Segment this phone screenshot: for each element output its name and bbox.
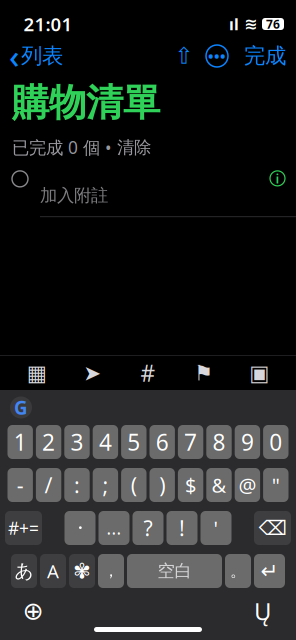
staticText: ( bbox=[131, 471, 137, 499]
button[interactable]: Add tag bbox=[129, 357, 167, 389]
staticText: 空白 bbox=[157, 560, 191, 582]
button[interactable]: 4 bbox=[93, 425, 118, 459]
button[interactable]: ) bbox=[149, 468, 175, 502]
staticText: @ bbox=[238, 472, 256, 498]
staticText: " bbox=[272, 472, 280, 498]
button[interactable]: @ bbox=[235, 468, 260, 502]
button[interactable]: ; bbox=[93, 468, 118, 502]
staticText: 加入附註 bbox=[40, 185, 108, 206]
staticText: ・ bbox=[71, 517, 88, 539]
staticText: 完成 bbox=[244, 43, 286, 69]
staticText: 5 bbox=[127, 427, 140, 457]
staticText: # bbox=[140, 358, 155, 388]
button[interactable]: 6 bbox=[149, 425, 175, 459]
button[interactable]: ... bbox=[98, 511, 129, 545]
button[interactable]: 3 bbox=[64, 425, 90, 459]
button[interactable]: / bbox=[36, 468, 61, 502]
staticText bbox=[40, 165, 45, 190]
staticText: 清除 bbox=[117, 137, 151, 158]
button[interactable]: ・ bbox=[64, 511, 95, 545]
staticText: あ bbox=[14, 559, 33, 582]
staticText: ? bbox=[143, 514, 152, 542]
button[interactable]: Flag bbox=[185, 357, 223, 389]
staticText: ••• bbox=[208, 46, 226, 66]
staticText: ⊕ bbox=[22, 597, 43, 625]
staticText: 0 bbox=[269, 427, 282, 457]
button[interactable]: - bbox=[7, 468, 33, 502]
button[interactable] bbox=[0, 171, 296, 217]
staticText: Ų bbox=[254, 595, 272, 627]
staticText: 已完成 0 個 bbox=[12, 136, 100, 159]
staticText: A bbox=[47, 559, 59, 583]
staticText: / bbox=[45, 471, 53, 499]
staticText: 6 bbox=[156, 427, 169, 457]
button[interactable]: 5 bbox=[121, 425, 146, 459]
button[interactable]: $ bbox=[178, 468, 203, 502]
button[interactable]: Add date bbox=[18, 357, 56, 389]
staticText: ⚑ bbox=[194, 361, 213, 385]
button[interactable]: & bbox=[206, 468, 232, 502]
button[interactable]: #+= bbox=[5, 511, 42, 545]
staticText: G bbox=[14, 395, 28, 420]
staticText: 76 bbox=[266, 16, 280, 32]
staticText: $ bbox=[185, 472, 196, 498]
staticText: ; bbox=[102, 471, 108, 499]
staticText: ▦ bbox=[27, 361, 47, 385]
button[interactable]: 9 bbox=[235, 425, 260, 459]
button[interactable]: Add photo bbox=[240, 357, 278, 389]
button[interactable]: 清除 bbox=[117, 137, 151, 158]
staticText: 1 bbox=[14, 427, 27, 457]
staticText: 4 bbox=[99, 427, 112, 457]
staticText: 2 bbox=[42, 427, 55, 457]
staticText: ! bbox=[179, 514, 185, 542]
staticText: ⇧ bbox=[174, 43, 193, 69]
button[interactable]: ， bbox=[98, 554, 124, 588]
staticText: ✾ bbox=[73, 559, 91, 583]
button[interactable]: ‹ bbox=[0, 31, 63, 81]
staticText: ⌫ bbox=[258, 517, 286, 539]
staticText: • bbox=[105, 136, 112, 159]
button[interactable]: ! bbox=[166, 511, 197, 545]
staticText: 21:01 bbox=[23, 12, 72, 36]
button[interactable]: 1 bbox=[7, 425, 33, 459]
staticText: i bbox=[275, 169, 279, 187]
button[interactable]: 空白 bbox=[127, 554, 222, 588]
button[interactable]: Share bbox=[168, 41, 200, 71]
staticText: 3 bbox=[70, 427, 83, 457]
staticText: ▣ bbox=[249, 361, 269, 385]
staticText: - bbox=[17, 471, 24, 499]
staticText: ‹ bbox=[9, 35, 19, 77]
button[interactable]: Dictation bbox=[246, 597, 280, 625]
button[interactable]: A bbox=[40, 554, 66, 588]
button[interactable]: Switch keyboard bbox=[16, 597, 50, 625]
staticText: : bbox=[74, 471, 80, 499]
staticText: ... bbox=[106, 516, 121, 539]
staticText: ↵ bbox=[260, 559, 278, 583]
button[interactable]: ( bbox=[121, 468, 146, 502]
button[interactable]: Keyboard settings bbox=[69, 554, 95, 588]
staticText: ， bbox=[103, 561, 119, 581]
staticText: 9 bbox=[241, 427, 254, 457]
staticText: #+= bbox=[8, 516, 39, 539]
button[interactable]: 完成 bbox=[234, 39, 296, 73]
button[interactable]: Delete bbox=[254, 511, 291, 545]
staticText: ıl bbox=[229, 13, 239, 35]
button[interactable]: 0 bbox=[263, 425, 288, 459]
button[interactable]: : bbox=[64, 468, 90, 502]
button[interactable]: 2 bbox=[36, 425, 61, 459]
staticText: 8 bbox=[212, 427, 225, 457]
staticText: ) bbox=[159, 471, 165, 499]
button[interactable]: Add location bbox=[73, 357, 111, 389]
button[interactable]: Google search bbox=[10, 396, 32, 418]
button[interactable]: " bbox=[263, 468, 288, 502]
staticText: & bbox=[211, 472, 226, 498]
button[interactable]: 。 bbox=[225, 554, 251, 588]
button[interactable]: ' bbox=[200, 511, 231, 545]
button[interactable]: 8 bbox=[206, 425, 232, 459]
button[interactable]: 7 bbox=[178, 425, 203, 459]
button[interactable]: ? bbox=[132, 511, 163, 545]
button[interactable]: ↵ bbox=[254, 554, 285, 588]
staticText: ➤ bbox=[83, 361, 101, 385]
button[interactable]: More bbox=[200, 41, 234, 71]
button[interactable]: あ bbox=[11, 554, 37, 588]
